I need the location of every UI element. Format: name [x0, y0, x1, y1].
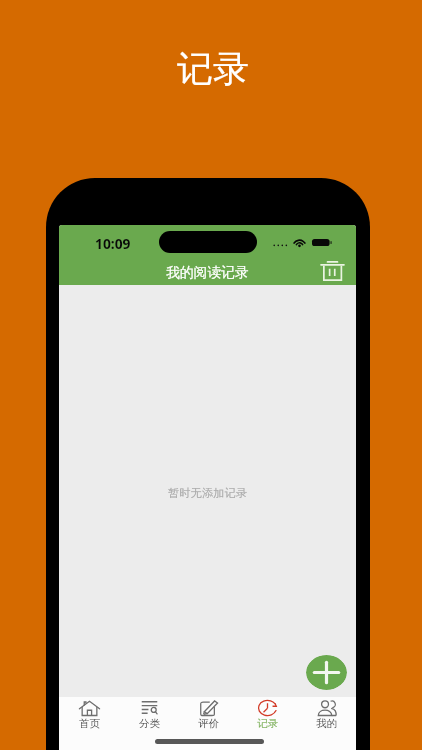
button[interactable]: 我的 [297, 697, 356, 739]
button[interactable]: 分类 [119, 697, 179, 739]
staticText: 首页 [79, 717, 100, 730]
staticText: 我的阅读记录 [166, 264, 249, 281]
button[interactable]: 首页 [59, 697, 119, 739]
staticText: 记录 [177, 46, 249, 91]
button[interactable]: Delete all records [318, 258, 346, 283]
staticText: 记录 [257, 717, 278, 730]
staticText: 我的 [316, 717, 337, 730]
staticText: 分类 [139, 717, 160, 730]
staticText: 评价 [198, 717, 219, 730]
button[interactable]: Add record [306, 655, 347, 690]
button[interactable]: 记录 [238, 697, 297, 739]
staticText: 暂时无添加记录 [168, 486, 248, 500]
staticText: 10:09 [95, 234, 131, 253]
button[interactable]: 评价 [179, 697, 238, 739]
